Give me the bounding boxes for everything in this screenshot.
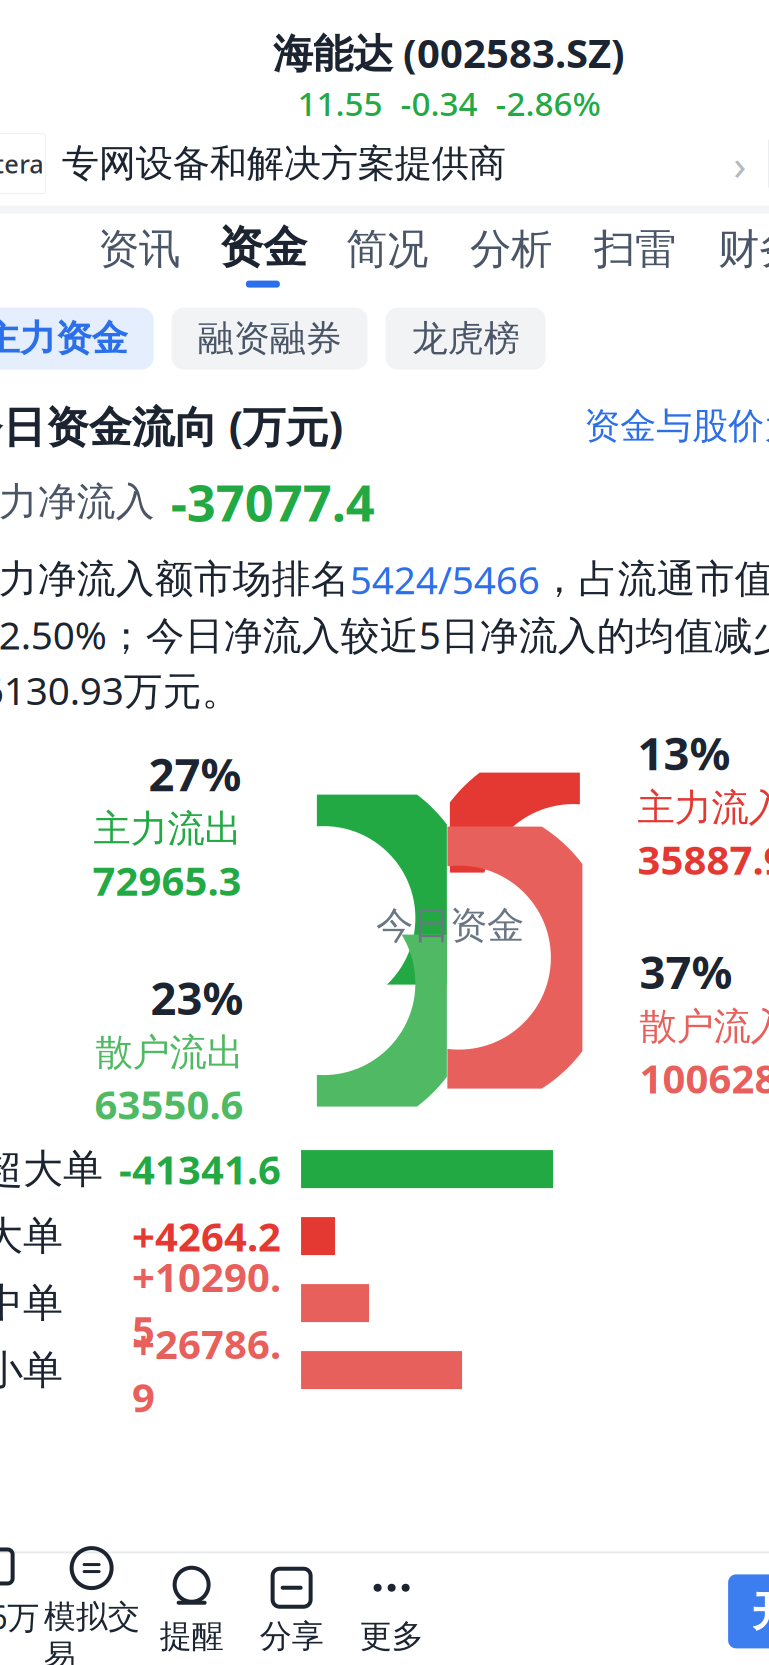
staticText: 主力净流入 [0, 478, 155, 526]
staticText: 11.55 -0.34 -2.86% [297, 81, 600, 125]
staticText: 模拟交易 [44, 1597, 140, 1665]
staticText: 大单 [0, 1211, 63, 1261]
staticText: 分享 [260, 1617, 324, 1656]
staticText: 中单 [0, 1278, 63, 1328]
staticText: 提醒 [160, 1617, 224, 1656]
staticText: 23% [150, 967, 243, 1028]
button[interactable]: 资金与股价为何背离 [584, 404, 769, 448]
button[interactable]: 资讯 [77, 214, 201, 300]
button[interactable]: 融资融券 [172, 308, 368, 370]
staticText: 小单 [0, 1345, 63, 1395]
staticText: 例2.50%；今日净流入较近5日净流入的均值减少 [0, 609, 769, 660]
staticText: ，占流通市值比 [540, 555, 769, 603]
staticText: 扫雷 [594, 224, 676, 275]
button[interactable]: 财务 [697, 214, 769, 300]
button[interactable]: 主力资金 [0, 308, 154, 370]
staticText: 72965.3 [92, 854, 241, 907]
staticText: 分析 [470, 224, 552, 275]
button[interactable]: 分析 [449, 214, 573, 300]
button[interactable]: 模拟交易 [42, 1561, 142, 1661]
staticText: 散户流入 [639, 1004, 769, 1049]
staticText: 开户交易 [752, 1586, 769, 1637]
button[interactable]: 简况 [325, 214, 449, 300]
staticText: 海能达 (002583.SZ) [273, 26, 625, 79]
staticText: 简况 [346, 224, 428, 275]
staticText: 今日资金流向 (万元) [0, 398, 343, 454]
staticText: 46130.93万元。 [0, 664, 241, 715]
button[interactable]: 更多 [342, 1561, 442, 1661]
staticText: 63550.6 [94, 1077, 243, 1131]
staticText: 资金 [219, 221, 307, 275]
staticText: 主力资金 [0, 316, 128, 361]
staticText: 资讯 [98, 224, 180, 275]
button[interactable]: Hytera [0, 122, 768, 206]
staticText: 专网设备和解决方案提供商 [62, 141, 506, 187]
staticText: 主力流入 [637, 785, 769, 831]
staticText: 35887.9 [637, 833, 769, 886]
staticText: 资金与股价为何背离 [584, 404, 769, 448]
staticText: 13% [637, 723, 730, 783]
staticText: › [733, 135, 746, 192]
staticText: 主力流出 [93, 806, 241, 852]
staticText: -37077.4 [171, 468, 375, 536]
staticText: 主力净流入额市场排名 [0, 555, 350, 603]
button[interactable]: 分享 [242, 1561, 342, 1661]
button[interactable]: 开户交易 [728, 1574, 769, 1648]
staticText: 更多 [360, 1617, 424, 1656]
button[interactable]: 龙虎榜 [386, 308, 546, 370]
button[interactable]: 资金 [201, 214, 325, 300]
staticText: +4264.2 [132, 1209, 281, 1263]
staticText: +10290.5 [132, 1250, 281, 1356]
button[interactable]: 扫雷 [573, 214, 697, 300]
button[interactable]: 提醒 [142, 1561, 242, 1661]
staticText: 100628.0 [639, 1051, 769, 1105]
staticText: 27% [148, 744, 241, 804]
staticText: 19.6万评 [0, 1595, 39, 1665]
staticText: 5424/5466 [350, 554, 540, 605]
staticText: 今日资金 [376, 903, 524, 949]
staticText: 龙虎榜 [412, 316, 520, 361]
staticText: Hytera [0, 147, 43, 180]
staticText: 散户流出 [95, 1030, 243, 1075]
staticText: -41341.6 [119, 1142, 281, 1196]
button[interactable]: 19.6万评 [0, 1561, 42, 1661]
staticText: 财务 [718, 224, 769, 275]
staticText: 融资融券 [198, 316, 342, 361]
staticText: 超大单 [0, 1144, 103, 1194]
staticText: +26786.9 [132, 1317, 281, 1423]
staticText: 37% [639, 941, 732, 1002]
